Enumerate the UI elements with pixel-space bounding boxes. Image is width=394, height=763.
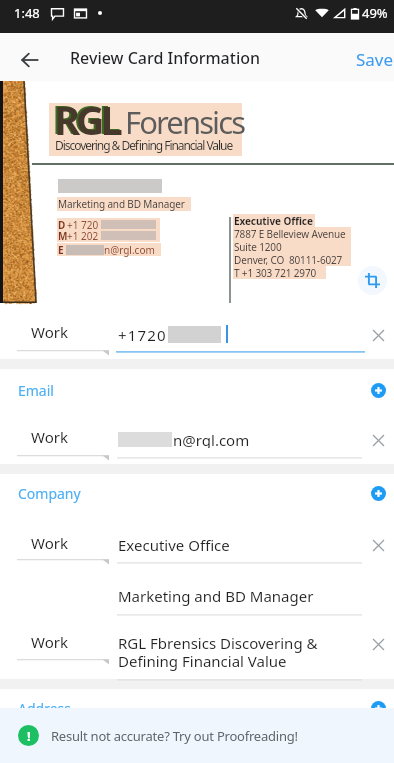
staticText: Work <box>31 322 68 342</box>
button[interactable]: Clear field <box>364 531 392 559</box>
button[interactable]: Clear field <box>364 426 392 454</box>
staticText: Address <box>18 699 71 718</box>
button[interactable]: Executive Office <box>118 535 358 555</box>
staticText: D <box>58 218 66 232</box>
staticText: 1:48 <box>14 4 40 22</box>
button[interactable]: Add Address <box>365 695 391 721</box>
button[interactable]: Add Company <box>365 480 391 506</box>
staticText: Executive Office <box>118 535 230 555</box>
staticText: Marketing and BD Manager <box>118 586 314 606</box>
staticText: +1720 <box>118 325 167 343</box>
button[interactable]: Back <box>15 45 45 75</box>
button[interactable]: Marketing and BD Manager <box>118 586 358 606</box>
button[interactable]: Company <box>0 475 394 511</box>
button[interactable]: Email <box>0 372 394 408</box>
button[interactable]: Work <box>17 315 109 355</box>
staticText: Forensics <box>125 101 245 143</box>
button[interactable]: Work <box>17 526 109 564</box>
staticText: Work <box>31 533 68 553</box>
button[interactable]: Add Email <box>365 377 391 403</box>
button[interactable]: Clear field <box>364 321 392 349</box>
button[interactable]: Save <box>348 35 394 83</box>
staticText: +1 202 <box>67 229 99 243</box>
button[interactable]: +1720 <box>118 325 228 343</box>
staticText: n@rgl.com <box>173 430 250 448</box>
staticText: Work <box>31 427 68 447</box>
staticText: RGL Fbrensics Discovering & Defining Fin… <box>118 633 318 672</box>
button[interactable]: RGL Fbrensics Discovering & Defining Fin… <box>118 633 358 672</box>
button[interactable]: Address <box>0 690 394 726</box>
staticText: Suite 1200 <box>234 240 282 254</box>
staticText: Executive Office <box>234 214 313 228</box>
button[interactable]: Work <box>17 420 109 460</box>
staticText: 49% <box>362 4 388 22</box>
staticText: Marketing and BD Manager <box>58 197 185 211</box>
staticText: Work <box>31 632 68 652</box>
staticText: Denver, CO 80111-6027 <box>234 253 343 267</box>
staticText: Result not accurate? Try out Proofreadin… <box>51 727 298 745</box>
staticText: Review Card Information <box>70 47 261 69</box>
button[interactable]: n@rgl.com <box>118 430 250 448</box>
staticText: 7887 E Belleview Avenue <box>234 227 346 241</box>
staticText: Email <box>18 381 54 400</box>
staticText: RGL <box>54 92 119 146</box>
staticText: T +1 303 721 2970 <box>234 266 317 280</box>
button[interactable]: Clear field <box>364 630 392 658</box>
staticText: Discovering & Defining Financial Value <box>55 137 233 153</box>
staticText: +1 720 <box>67 218 99 232</box>
staticText: RGL <box>52 91 117 145</box>
staticText: Save <box>356 48 394 71</box>
staticText: Company <box>18 484 81 503</box>
staticText: E <box>58 243 64 257</box>
staticText: n@rgl.com <box>104 243 155 257</box>
button[interactable]: Work <box>17 625 109 664</box>
staticText: M <box>58 229 68 243</box>
button[interactable]: ! <box>0 708 394 763</box>
staticText: ! <box>27 727 31 745</box>
button[interactable]: Crop image <box>358 266 387 295</box>
